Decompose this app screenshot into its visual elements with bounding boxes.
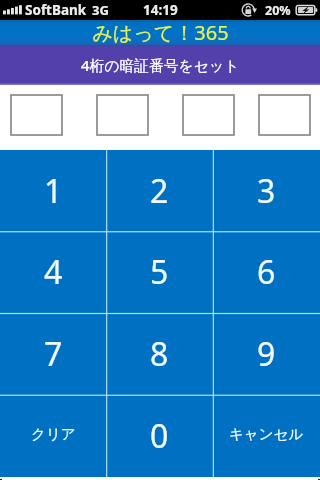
other: Rotation lock <box>242 2 257 18</box>
button[interactable]: 7 <box>0 313 106 395</box>
staticText: 0 <box>150 414 169 458</box>
staticText: 7 <box>44 332 63 376</box>
staticText: 6 <box>257 250 276 294</box>
staticText: クリア <box>31 425 76 443</box>
staticText: 8 <box>150 332 169 376</box>
staticText: 14:19 <box>143 1 178 19</box>
other: Battery 20 percent charging <box>295 4 318 16</box>
button[interactable]: 5 <box>106 231 213 313</box>
button[interactable]: PIN digit <box>183 95 234 135</box>
button[interactable]: 3 <box>213 150 320 231</box>
button[interactable]: 8 <box>106 313 213 395</box>
button[interactable]: 1 <box>0 150 106 231</box>
button[interactable]: クリア <box>0 395 106 477</box>
button[interactable]: 2 <box>106 150 213 231</box>
staticText: キャンセル <box>229 425 304 443</box>
button[interactable]: PIN digit <box>11 95 62 135</box>
staticText: 3G <box>92 1 109 19</box>
staticText: 1 <box>44 169 63 213</box>
button[interactable]: PIN digit <box>259 95 310 135</box>
staticText: 3 <box>257 169 276 213</box>
button[interactable]: キャンセル <box>213 395 320 477</box>
staticText: みはって！365 <box>92 19 229 44</box>
staticText: 9 <box>257 332 276 376</box>
staticText: 4桁の暗証番号をセット <box>81 55 240 75</box>
button[interactable]: 6 <box>213 231 320 313</box>
button[interactable]: 0 <box>106 395 213 477</box>
button[interactable]: 4 <box>0 231 106 313</box>
staticText: 2 <box>150 169 169 213</box>
button[interactable]: PIN digit <box>97 95 148 135</box>
button[interactable]: 9 <box>213 313 320 395</box>
staticText: 5 <box>150 250 169 294</box>
staticText: 4 <box>44 250 63 294</box>
staticText: 20% <box>265 2 291 19</box>
staticText: SoftBank <box>25 1 87 19</box>
